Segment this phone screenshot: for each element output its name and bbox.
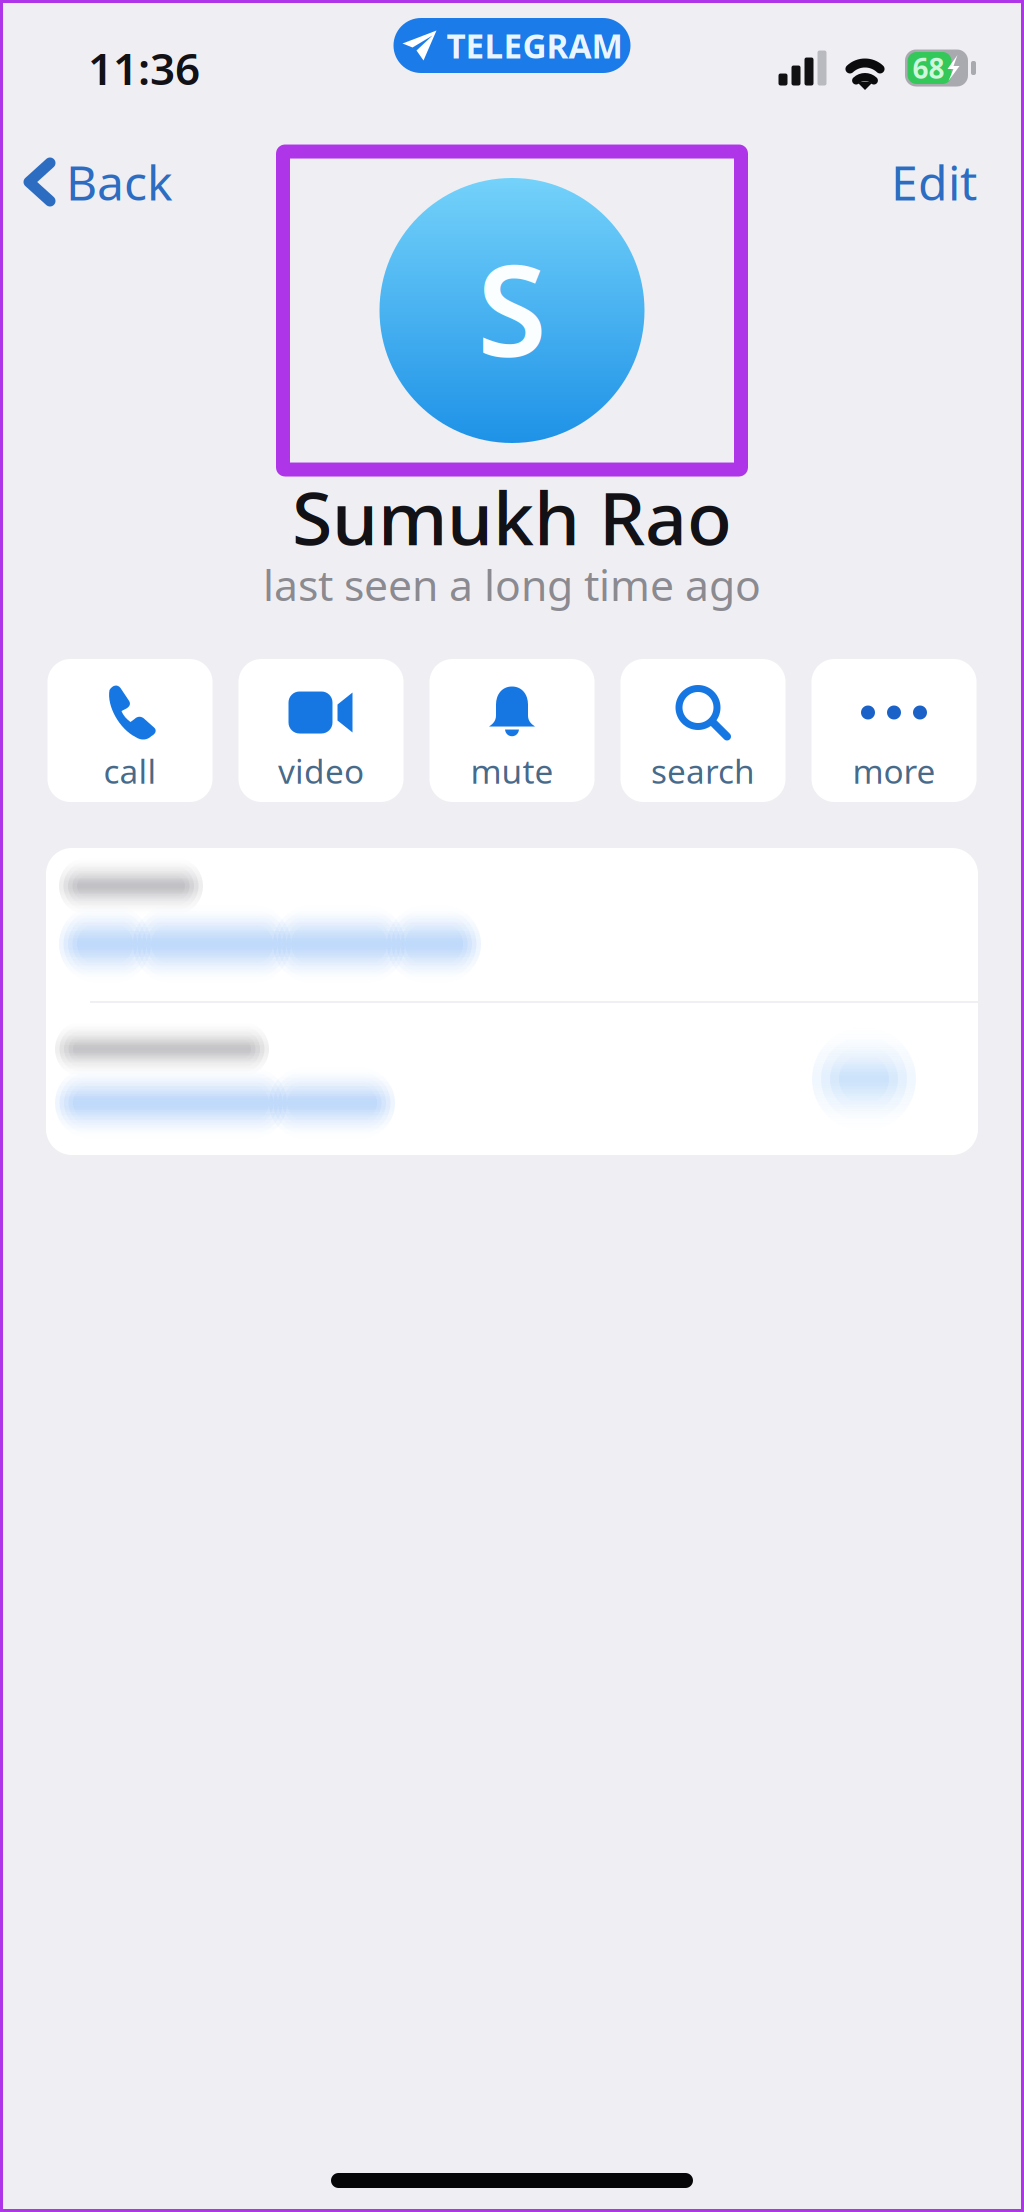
staticText: Back <box>66 150 173 214</box>
button[interactable]: video <box>238 659 403 802</box>
staticText: 68 <box>912 49 944 87</box>
staticText: TELEGRAM <box>446 23 622 68</box>
staticText: more <box>852 749 935 793</box>
button[interactable]: Edit <box>891 146 1024 218</box>
staticText: search <box>651 749 755 793</box>
staticText: 11:36 <box>88 39 200 97</box>
staticText: S <box>477 223 547 392</box>
staticText: Sumukh Rao <box>292 468 732 565</box>
button[interactable]: search <box>620 659 785 802</box>
staticText: mute <box>470 749 553 793</box>
button[interactable]: more <box>811 659 976 802</box>
button[interactable]: mute <box>429 659 594 802</box>
staticText: call <box>103 749 156 793</box>
staticText: video <box>278 749 364 793</box>
button[interactable] <box>46 1003 978 1155</box>
staticText: last seen a long time ago <box>263 556 761 613</box>
button[interactable] <box>46 848 978 1001</box>
button[interactable]: call <box>47 659 212 802</box>
button[interactable]: Back <box>0 146 173 218</box>
staticText: Edit <box>891 150 977 214</box>
